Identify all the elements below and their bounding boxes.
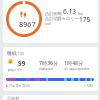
staticText: 睡眠 [7, 50, 17, 56]
staticText: 1/10 [18, 52, 25, 56]
staticText: 175 [79, 15, 91, 24]
staticText: 合計距離 [45, 11, 62, 16]
staticText: 6.13 [63, 7, 77, 16]
staticText: 10月19日 23:04 [9, 84, 30, 88]
button[interactable]: 8967 [3, 0, 98, 43]
staticText: 1時48分 [64, 59, 84, 66]
staticText: kcal [45, 22, 51, 26]
staticText: 99 [18, 59, 26, 68]
staticText: 7時36分 [39, 59, 59, 66]
button[interactable]: 心拍数 [3, 95, 98, 100]
staticText: km [78, 11, 84, 16]
staticText: 5:40 [87, 84, 93, 88]
other: Sleep quality [8, 59, 13, 64]
staticText: 8967 [19, 19, 36, 29]
staticText: 心拍数 [7, 96, 20, 100]
staticText: 深い睡眠の継続時間 [64, 67, 90, 71]
staticText: 総睡眠時間 [39, 67, 53, 71]
button[interactable]: 睡眠 [3, 47, 98, 91]
staticText: 合計消費カロリー [45, 16, 79, 21]
staticText: 睡眠スコア [8, 68, 23, 72]
